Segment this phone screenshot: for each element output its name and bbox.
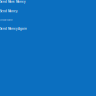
staticText: Send Money xyxy=(0,9,17,13)
staticText: Send More Money xyxy=(0,0,25,3)
staticText: Send Money Again xyxy=(0,27,27,30)
staticText: Send More Money xyxy=(0,19,13,21)
